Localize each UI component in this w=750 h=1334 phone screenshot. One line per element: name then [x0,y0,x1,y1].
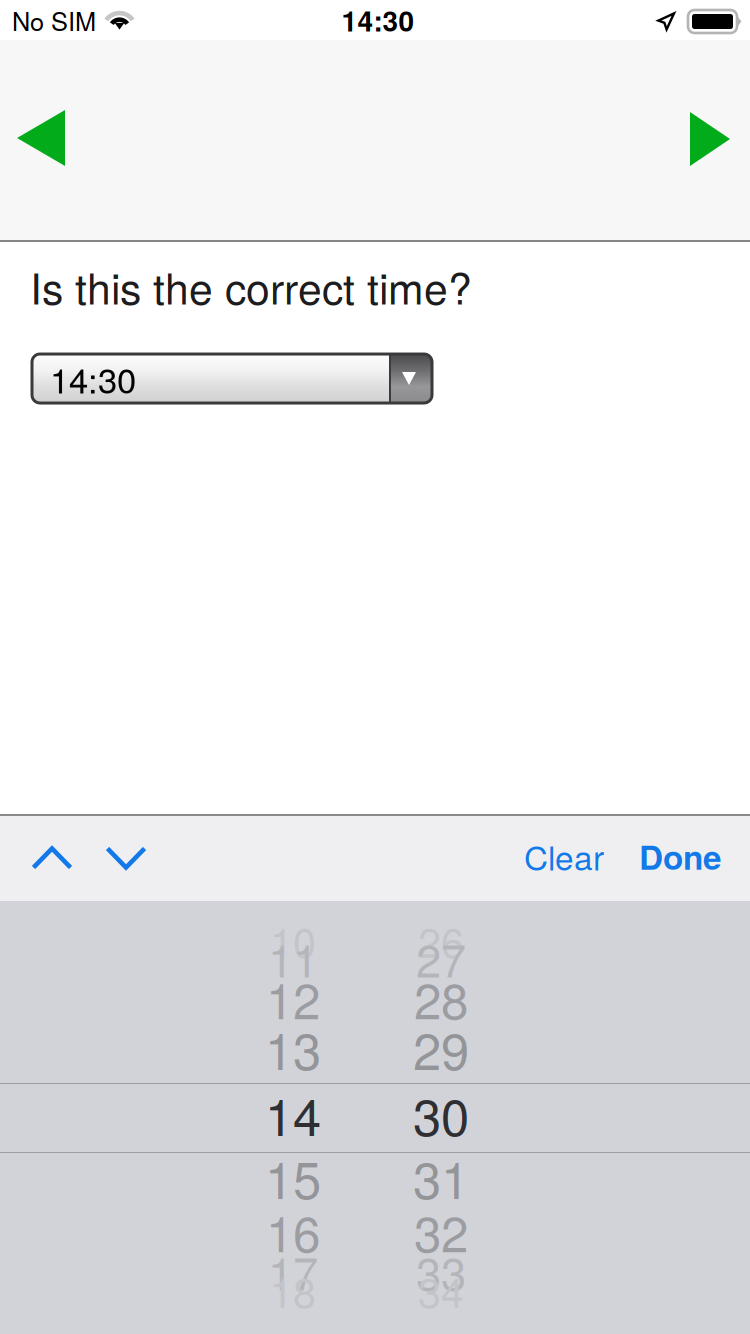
staticText: 16 [266,1196,320,1266]
button[interactable]: Previous [0,100,110,190]
staticText: 14 [265,1078,321,1150]
staticText: No SIM [12,2,96,38]
staticText: 12 [266,963,320,1033]
staticText: Clear [524,832,604,880]
staticText: 15 [265,1141,321,1213]
staticText: 14:30 [50,354,136,403]
staticText: 28 [414,963,468,1033]
staticText: 27 [416,925,466,990]
button[interactable]: Done [622,815,739,897]
staticText: 32 [414,1196,468,1266]
staticText: 11 [268,925,318,990]
staticText: 13 [265,1012,321,1084]
staticText: 31 [413,1141,469,1213]
button[interactable]: Clear [504,815,624,897]
button[interactable]: Next [650,100,750,190]
staticText: 17 [268,1238,318,1303]
staticText: 10 [270,910,316,970]
staticText: 33 [416,1238,466,1303]
staticText: 34 [418,1260,464,1320]
staticText: 14:30 [341,0,414,40]
button[interactable]: Next field [87,818,167,900]
staticText: 30 [413,1078,469,1150]
button[interactable]: 14:30 [32,354,432,403]
button[interactable]: Previous field [13,818,93,900]
staticText: 29 [413,1012,469,1084]
staticText: 26 [418,910,464,970]
staticText: Is this the correct time? [30,255,472,317]
staticText: Done [639,832,722,880]
staticText: 18 [270,1260,316,1320]
